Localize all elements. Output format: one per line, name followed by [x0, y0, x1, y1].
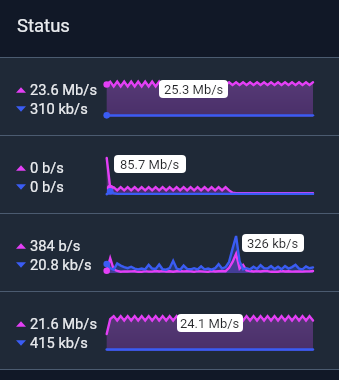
staticText: 415 kb/s: [30, 334, 88, 351]
staticText: 20.8 kb/s: [30, 256, 92, 273]
button[interactable]: 21.6 Mb/s: [0, 292, 339, 369]
staticText: 21.6 Mb/s: [30, 315, 97, 332]
staticText: 384 b/s: [30, 237, 81, 254]
staticText: 0 b/s: [30, 159, 64, 176]
button[interactable]: 23.6 Mb/s: [0, 58, 339, 135]
staticText: 0 b/s: [30, 178, 64, 195]
button[interactable]: 384 b/s: [0, 214, 339, 291]
staticText: 85.7 Mb/s: [120, 157, 180, 172]
staticText: Status: [17, 15, 70, 37]
button[interactable]: 0 b/s: [0, 136, 339, 213]
staticText: 25.3 Mb/s: [164, 82, 224, 97]
button[interactable]: Status: [0, 0, 339, 57]
staticText: 310 kb/s: [30, 100, 88, 117]
staticText: 23.6 Mb/s: [30, 81, 97, 98]
staticText: 24.1 Mb/s: [180, 316, 240, 331]
staticText: 326 kb/s: [247, 236, 299, 251]
